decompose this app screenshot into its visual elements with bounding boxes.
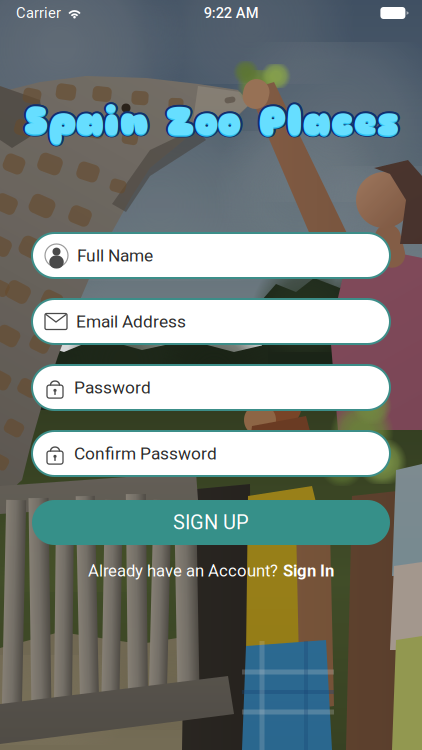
staticText: Spain Zoo Places xyxy=(23,94,398,144)
staticText: Spain Zoo Places xyxy=(22,94,397,144)
staticText: SIGN UP xyxy=(173,511,249,534)
staticText: Full Name xyxy=(77,245,153,266)
button[interactable]: Already have an Account? xyxy=(82,555,340,586)
button[interactable]: Email Address xyxy=(32,299,390,344)
staticText: Already have an Account? xyxy=(88,561,278,580)
button[interactable]: Confirm Password xyxy=(32,431,390,476)
staticText: Spain Zoo Places xyxy=(23,97,398,147)
staticText: Email Address xyxy=(76,311,186,332)
staticText: Spain Zoo Places xyxy=(26,96,401,146)
staticText: Spain Zoo Places xyxy=(25,94,400,144)
staticText: Spain Zoo Places xyxy=(25,98,400,147)
button[interactable]: SIGN UP xyxy=(32,500,390,545)
staticText: Spain Zoo Places xyxy=(21,96,396,146)
staticText: Spain Zoo Places xyxy=(23,98,398,148)
button[interactable]: Password xyxy=(32,365,390,410)
staticText: 9:22 AM xyxy=(204,4,259,22)
staticText: Spain Zoo Places xyxy=(22,98,397,147)
staticText: Carrier xyxy=(16,4,61,22)
staticText: Password xyxy=(74,377,151,398)
staticText: Sign In xyxy=(283,561,334,580)
staticText: Confirm Password xyxy=(74,443,217,464)
button[interactable]: Full Name xyxy=(32,233,390,278)
staticText: Spain Zoo Places xyxy=(23,96,398,146)
